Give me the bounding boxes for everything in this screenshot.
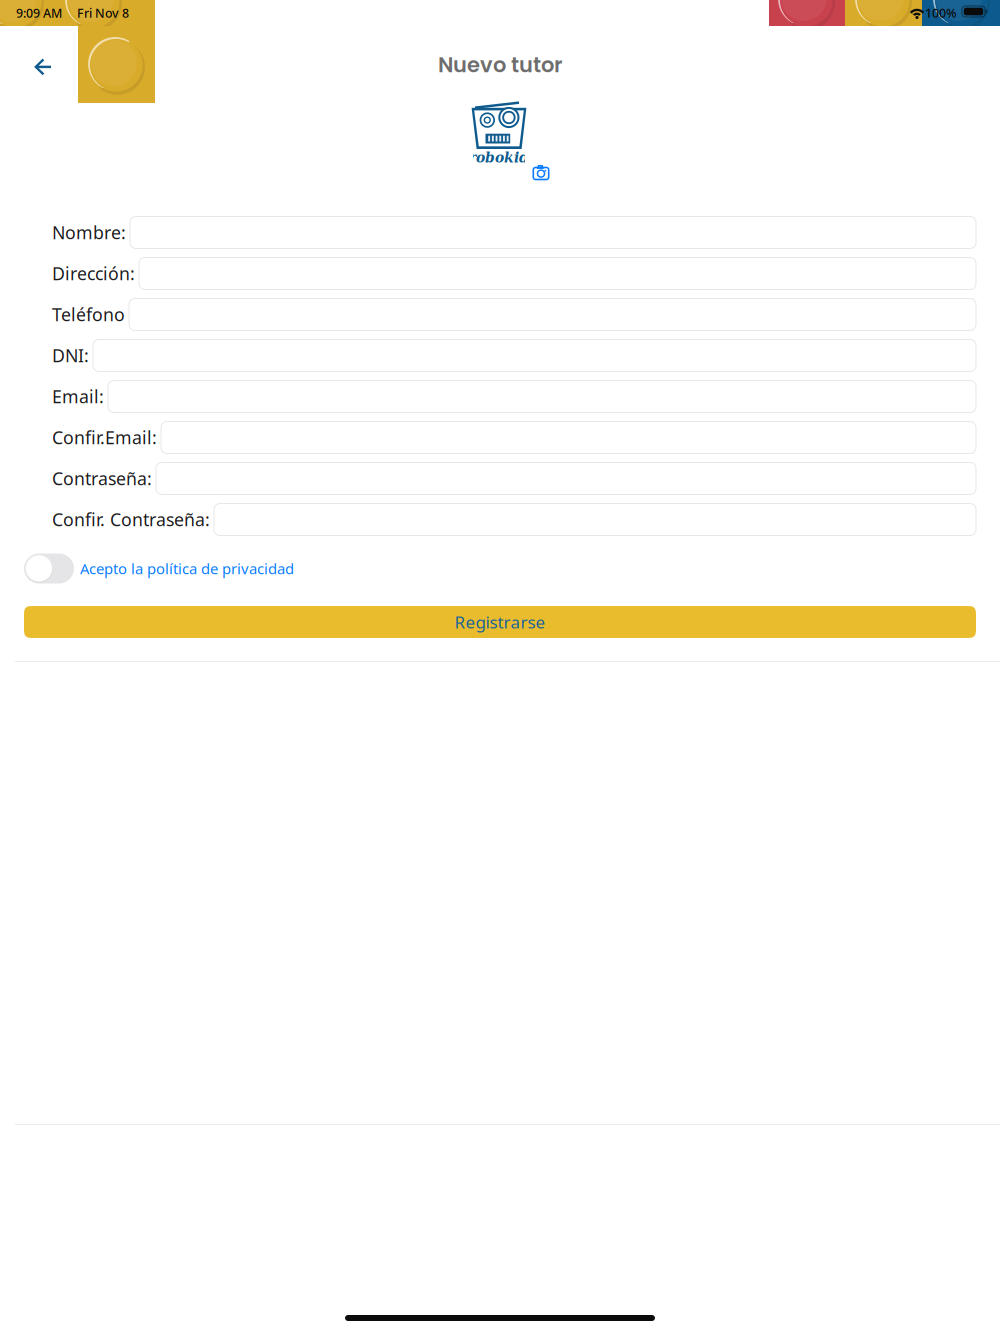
staticText: Confir. Contraseña: (52, 507, 210, 531)
staticText: robokid (469, 149, 529, 166)
button[interactable]: Teléfono (129, 298, 976, 330)
staticText: Fri Nov 8 (77, 4, 129, 21)
button[interactable]: Nombre: (130, 216, 976, 248)
staticText: Nombre: (52, 220, 126, 244)
staticText: 100% (925, 4, 957, 21)
staticText: Dirección: (52, 261, 135, 285)
button[interactable]: Back (21, 45, 65, 89)
button[interactable]: Dirección: (139, 257, 976, 289)
staticText: Contraseña: (52, 466, 152, 490)
staticText: 9:09 AM (16, 4, 62, 21)
button[interactable]: Acepto la política de privacidad (80, 558, 380, 579)
staticText: Teléfono (52, 302, 125, 326)
staticText: Registrarse (454, 610, 545, 634)
staticText: Confir.Email: (52, 425, 157, 449)
staticText: Acepto la política de privacidad (80, 558, 294, 579)
button[interactable]: Acepto la política de privacidad (24, 553, 74, 583)
button[interactable]: Registrarse (24, 606, 976, 638)
button[interactable]: Contraseña: (156, 462, 976, 494)
staticText: Nuevo tutor (438, 50, 562, 80)
button[interactable]: Change photo (528, 159, 554, 185)
staticText: DNI: (52, 343, 89, 367)
button[interactable]: Email: (108, 380, 976, 412)
button[interactable]: DNI: (93, 339, 976, 371)
button[interactable]: Confir.Email: (161, 421, 976, 453)
staticText: Email: (52, 384, 104, 408)
button[interactable]: Confir. Contraseña: (214, 503, 976, 535)
